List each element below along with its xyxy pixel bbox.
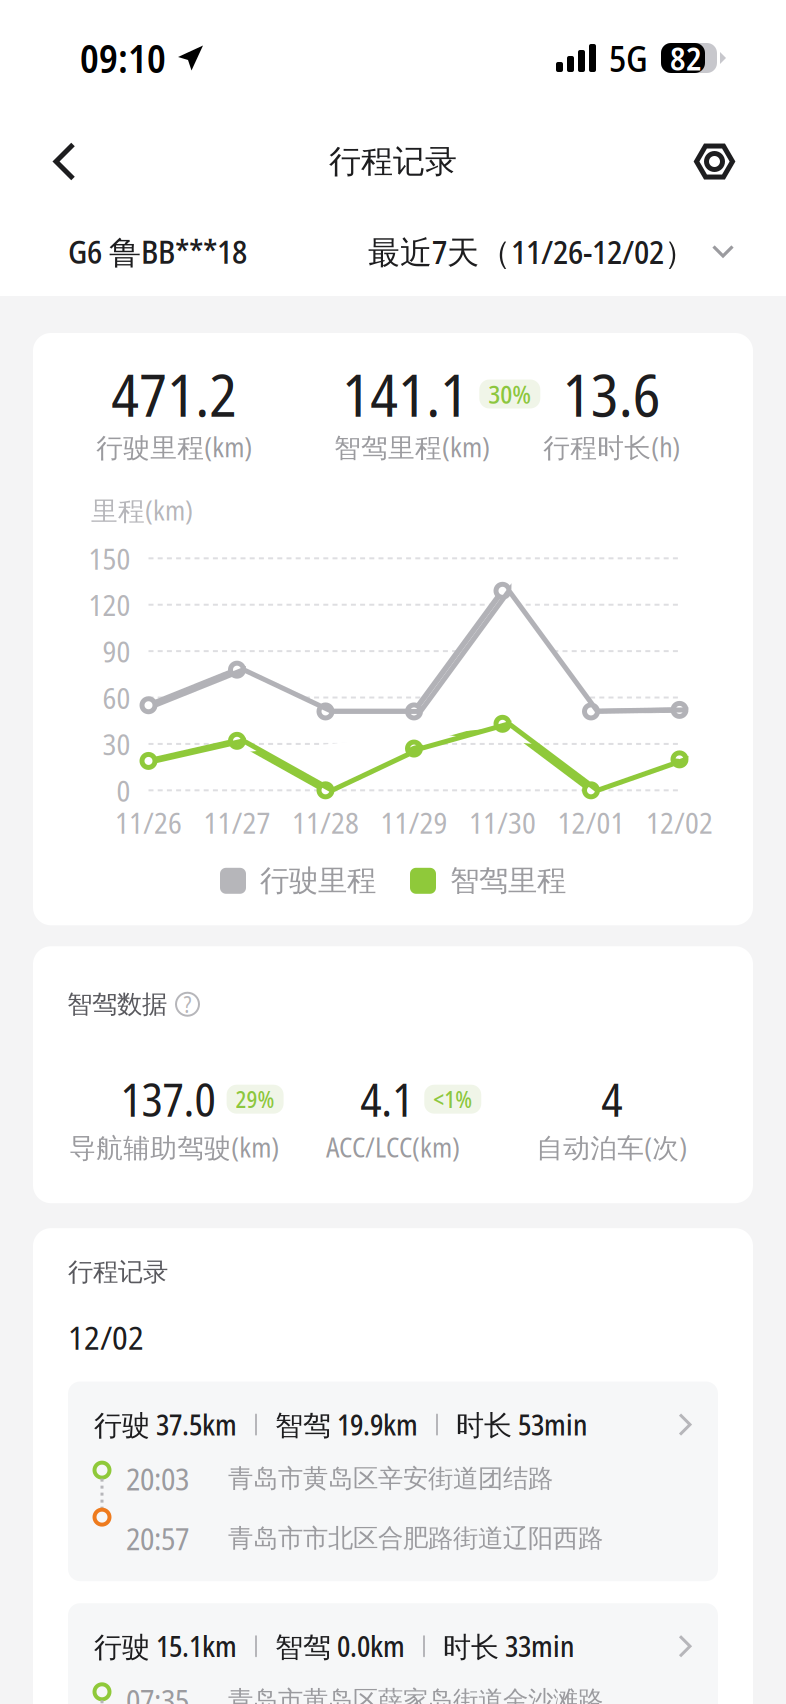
- staticText: 4.1: [360, 1068, 413, 1130]
- staticText: 82: [670, 36, 702, 80]
- button[interactable]: 行驶 37.5km: [68, 1381, 718, 1581]
- staticText: 30: [102, 724, 130, 764]
- staticText: 11/30: [469, 802, 536, 842]
- staticText: 智驾 0.0km: [275, 1627, 405, 1665]
- staticText: 0: [116, 770, 130, 810]
- staticText: 自动泊车(次): [536, 1129, 687, 1165]
- button[interactable]: G6 鲁BB***18: [68, 216, 247, 287]
- staticText: 智驾数据: [67, 988, 167, 1020]
- staticText: ?: [183, 989, 191, 1020]
- staticText: 471.2: [111, 354, 237, 434]
- staticText: 11/26: [115, 802, 182, 842]
- staticText: 智驾里程: [450, 862, 566, 899]
- staticText: 12/02: [68, 1314, 144, 1359]
- staticText: 行驶里程: [260, 862, 376, 899]
- staticText: 时长 53min: [456, 1405, 587, 1444]
- staticText: 60: [102, 677, 130, 717]
- button[interactable]: 行驶 15.1km: [68, 1603, 718, 1704]
- staticText: 30%: [488, 377, 531, 411]
- staticText: 12/01: [557, 802, 624, 842]
- staticText: 11/29: [380, 802, 447, 842]
- button[interactable]: Back: [33, 124, 96, 198]
- staticText: 09:10: [80, 32, 166, 84]
- staticText: 行驶里程(km): [96, 429, 252, 465]
- staticText: 20:57: [126, 1517, 189, 1559]
- staticText: 07:35: [126, 1679, 189, 1704]
- staticText: <1%: [433, 1084, 472, 1115]
- staticText: 120: [88, 585, 130, 625]
- button[interactable]: Settings: [674, 125, 755, 197]
- staticText: 行驶 15.1km: [94, 1627, 237, 1665]
- staticText: 20:03: [126, 1458, 189, 1499]
- staticText: 行程记录: [68, 1256, 168, 1288]
- staticText: 青岛市黄岛区辛安街道团结路: [228, 1463, 553, 1494]
- staticText: ACC/LCC(km): [326, 1129, 460, 1165]
- staticText: 11/28: [292, 802, 359, 842]
- staticText: 智驾里程(km): [334, 429, 490, 465]
- staticText: 时长 33min: [443, 1627, 574, 1665]
- staticText: 青岛市黄岛区薛家岛街道金沙滩路: [228, 1684, 603, 1704]
- staticText: 行程时长(h): [543, 429, 680, 465]
- staticText: 137.0: [121, 1068, 216, 1130]
- staticText: 里程(km): [91, 492, 193, 528]
- staticText: 最近7天（11/26-12/02）: [368, 230, 696, 273]
- staticText: G6 鲁BB***18: [68, 230, 247, 273]
- staticText: 4: [601, 1068, 622, 1130]
- staticText: 90: [102, 631, 130, 671]
- staticText: 行程记录: [329, 141, 457, 182]
- staticText: 12/02: [646, 802, 713, 842]
- staticText: 13.6: [563, 354, 661, 434]
- staticText: 智驾 19.9km: [275, 1405, 418, 1444]
- staticText: 青岛市市北区合肥路街道辽阳西路: [228, 1522, 603, 1554]
- staticText: 29%: [236, 1084, 275, 1115]
- button[interactable]: 最近7天（11/26-12/02）: [368, 216, 734, 287]
- staticText: 141.1: [342, 354, 468, 434]
- staticText: 11/27: [203, 802, 270, 842]
- staticText: 150: [88, 538, 130, 578]
- staticText: 行驶 37.5km: [94, 1405, 237, 1444]
- staticText: 5G: [609, 33, 648, 82]
- staticText: 导航辅助驾驶(km): [69, 1129, 279, 1165]
